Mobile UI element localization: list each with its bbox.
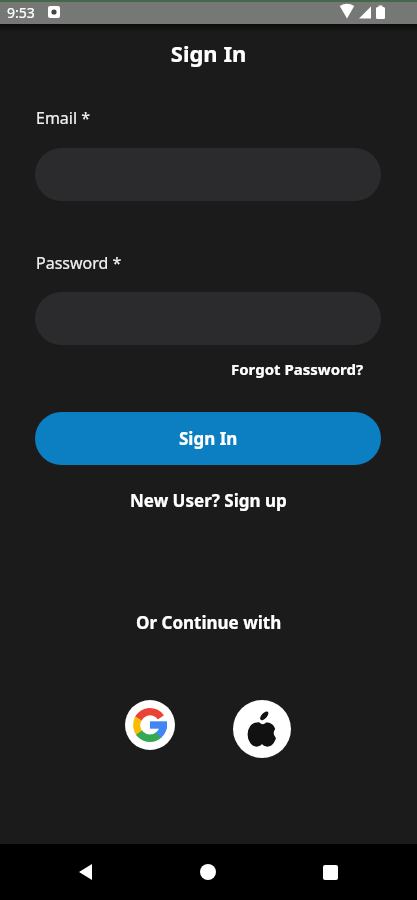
button[interactable] [233,700,291,758]
button[interactable]: New User? Sign up [130,489,287,512]
button[interactable] [35,292,381,345]
button[interactable]: Forgot Password? [231,359,364,379]
staticText: Sign In [0,38,417,68]
staticText: Sign In [179,427,238,450]
staticText: 9:53 [7,3,35,22]
button[interactable]: Sign In [35,412,381,465]
staticText: Password * [36,252,122,274]
button[interactable] [35,148,381,201]
staticText: Email * [36,107,91,129]
button[interactable] [314,856,346,888]
button[interactable] [69,856,101,888]
button[interactable] [125,700,175,750]
staticText: Or Continue with [136,611,282,634]
button[interactable] [192,856,224,888]
